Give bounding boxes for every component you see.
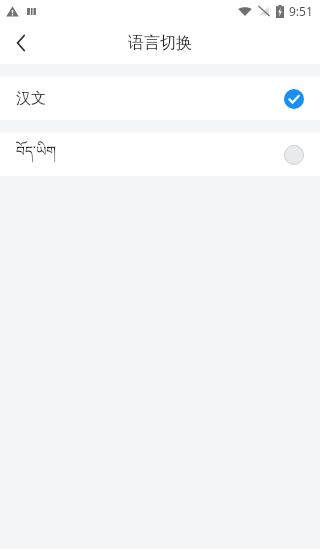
staticText: བོད་ཡིག <box>16 135 57 174</box>
staticText: 语言切换 <box>128 33 192 53</box>
button[interactable]: 汉文 <box>0 77 320 120</box>
staticText: 9:51 <box>289 3 313 19</box>
button[interactable]: Back <box>0 22 42 64</box>
button[interactable]: བོད་ཡིག <box>0 133 320 176</box>
staticText: 汉文 <box>16 89 46 108</box>
